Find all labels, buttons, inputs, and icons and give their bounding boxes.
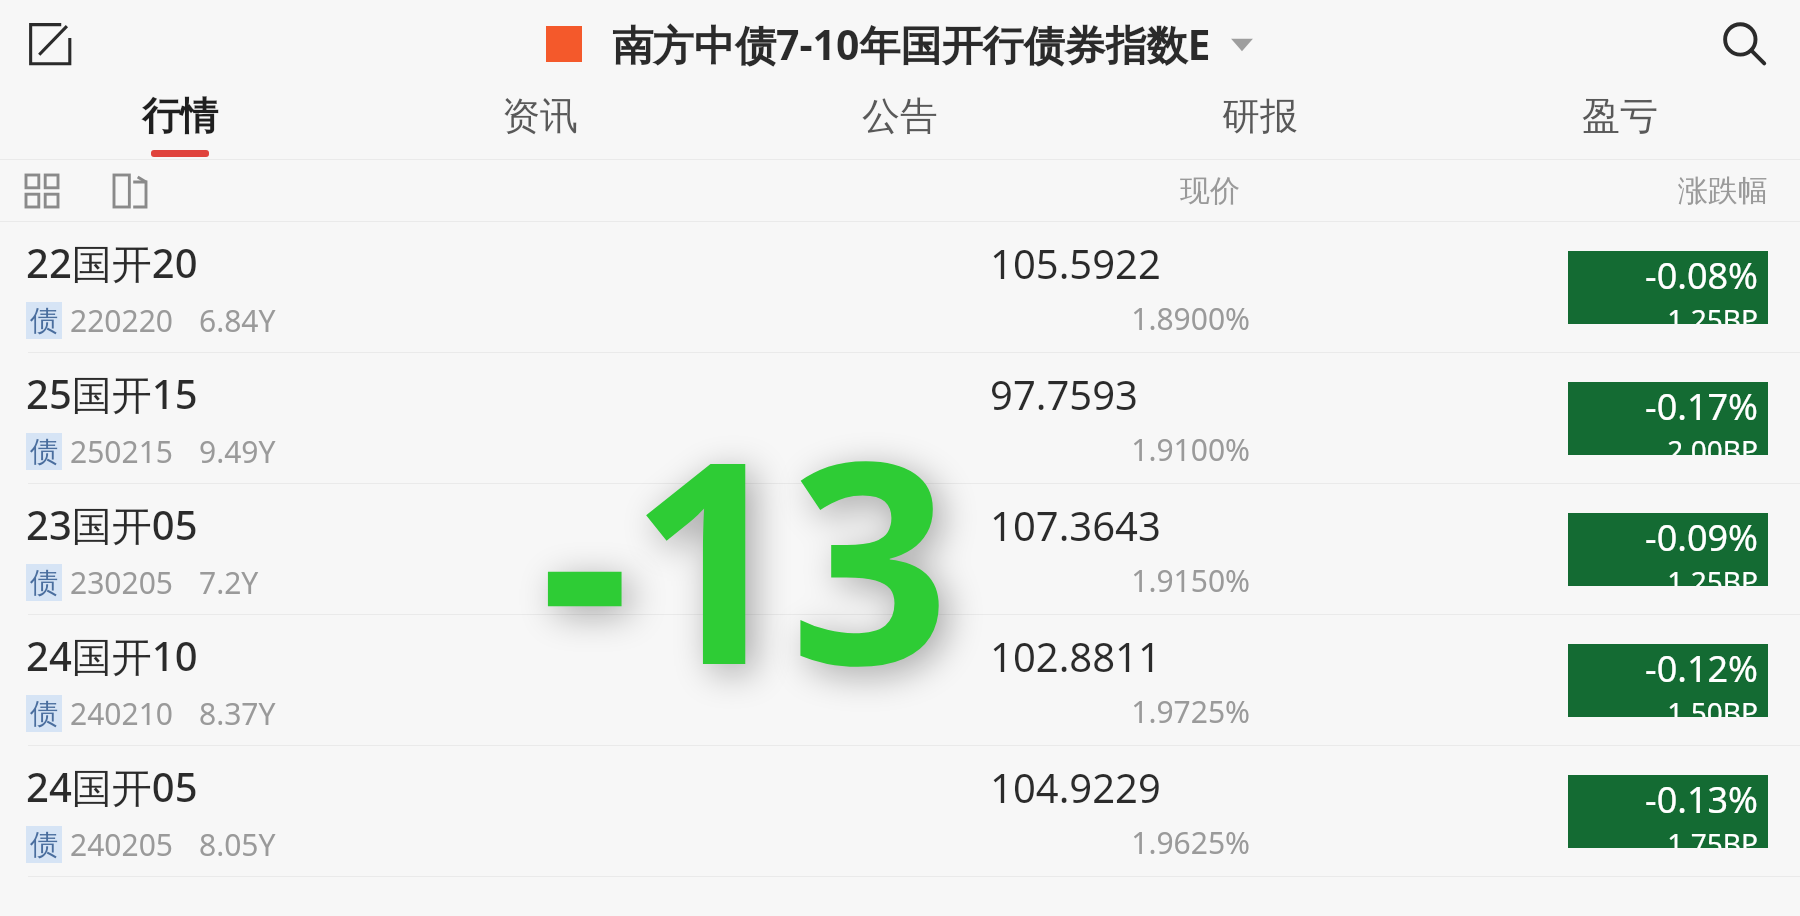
staticText: -0.13% [1568,775,1758,824]
button[interactable]: Sort [104,165,156,217]
staticText: 1.9625% [990,822,1250,863]
staticText: 240210 [70,693,173,734]
staticText: 104.9229 [990,760,1250,814]
staticText: 22国开20 [26,235,198,290]
staticText: 债 [30,303,58,338]
staticText: 1.25BP [1568,300,1758,324]
staticText: 研报 [1222,92,1298,140]
staticText: 现价 [1180,172,1240,210]
staticText: 230205 [70,562,173,603]
button[interactable]: Grid view [16,165,68,217]
staticText: 240205 [70,824,173,865]
button[interactable]: -0.17% [1568,382,1768,455]
staticText: 1.25BP [1568,562,1758,586]
staticText: -0.08% [1568,251,1758,300]
staticText: 南方中债7-10年国开行债券指数E [612,16,1211,72]
staticText: 107.3643 [990,498,1250,552]
staticText: 盈亏 [1582,92,1658,140]
staticText: 8.05Y [199,824,276,865]
staticText: 1.9150% [990,560,1250,601]
staticText: 9.49Y [199,431,276,472]
staticText: 1.75BP [1568,824,1758,848]
staticText: 23国开05 [26,497,198,552]
staticText: 涨跌幅 [1678,172,1768,210]
staticText: 行情 [142,92,218,140]
staticText: 102.8811 [990,629,1250,683]
button[interactable]: 行情 [0,88,360,160]
staticText: 公告 [862,92,938,140]
staticText: 7.2Y [199,562,259,603]
staticText: 220220 [70,300,173,341]
button[interactable]: Edit watchlist [18,12,82,76]
staticText: 24国开10 [26,628,198,683]
button[interactable]: Search [1710,10,1778,78]
staticText: 6.84Y [199,300,276,341]
staticText: 1.50BP [1568,693,1758,717]
staticText: 1.9100% [990,429,1250,470]
staticText: -0.12% [1568,644,1758,693]
button[interactable]: 公告 [720,88,1080,160]
button[interactable]: -0.08% [1568,251,1768,324]
staticText: 24国开05 [26,759,198,814]
staticText: -13 [540,365,950,746]
staticText: 债 [30,434,58,469]
button[interactable]: -0.09% [1568,513,1768,586]
button[interactable]: 研报 [1080,88,1440,160]
button[interactable]: 盈亏 [1440,88,1800,160]
staticText: 250215 [70,431,173,472]
button[interactable]: 资讯 [360,88,720,160]
staticText: -0.17% [1568,382,1758,431]
staticText: 1.8900% [990,298,1250,339]
staticText: 8.37Y [199,693,276,734]
staticText: 105.5922 [990,236,1250,290]
button[interactable]: -0.12% [1568,644,1768,717]
staticText: 1.9725% [990,691,1250,732]
staticText: 债 [30,827,58,862]
button[interactable]: 南方中债7-10年国开行债券指数E [546,16,1255,72]
staticText: 债 [30,696,58,731]
staticText: -0.09% [1568,513,1758,562]
button[interactable]: -0.13% [1568,775,1768,848]
staticText: 2.00BP [1568,431,1758,455]
staticText: 97.7593 [990,367,1250,421]
staticText: 债 [30,565,58,600]
staticText: 25国开15 [26,366,198,421]
staticText: 资讯 [502,92,578,140]
